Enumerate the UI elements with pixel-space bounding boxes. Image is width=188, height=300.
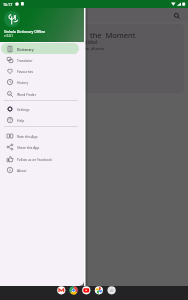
staticText: Follow us on Facebook [17,157,52,161]
staticText: v 3.0.1 [4,34,14,38]
staticText: Translator [17,58,33,62]
staticText: Settings [17,107,30,111]
staticText: Dictionary [17,47,34,51]
staticText: Word Finder [17,92,37,96]
staticText: Rate this App [17,134,38,138]
staticText: Saman, dhanna, [78,46,105,51]
staticText: Share this App [17,145,40,149]
staticText: chepidial [76,39,98,46]
button[interactable]: Translator [1,54,79,65]
staticText: Sinhala Dictionary Offline [4,29,46,34]
staticText: About [17,168,27,172]
button[interactable]: Rate this App [1,130,79,141]
staticText: Help [17,118,25,122]
other: Search [174,13,180,19]
staticText: History [17,80,29,84]
button[interactable]: Word Finder [1,88,79,99]
other: Taskbar apps [57,286,116,300]
staticText: 16:17 [3,2,13,7]
button[interactable]: Settings [1,103,79,114]
button[interactable]: Follow us on Facebook [1,153,79,164]
button[interactable]: Share this App [1,141,79,152]
button[interactable]: Favourites [1,65,79,76]
button[interactable]: About [1,164,79,175]
staticText: the Moment [90,30,136,40]
button[interactable]: Help [1,114,79,125]
staticText: Favourites [17,69,34,73]
button[interactable]: Dictionary [1,43,79,54]
button[interactable]: History [1,76,79,87]
